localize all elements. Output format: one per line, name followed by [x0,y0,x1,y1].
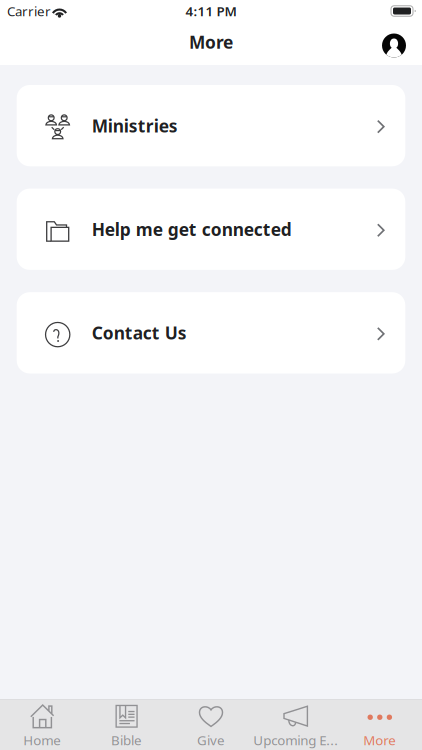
staticText: Upcoming E... [253,731,338,749]
staticText: Give [197,731,225,749]
button[interactable]: More [338,699,422,750]
button[interactable]: Give [169,699,253,750]
button[interactable]: Ministries [17,85,405,166]
button[interactable]: Account [372,19,416,67]
button[interactable]: Upcoming E... [253,699,338,750]
staticText: Ministries [92,114,178,137]
staticText: More [189,30,233,53]
button[interactable]: Contact Us [17,292,405,373]
staticText: 4:11 PM [185,2,236,20]
staticText: Carrier [7,2,51,20]
button[interactable]: Help me get connected [17,189,405,270]
staticText: Contact Us [92,321,187,344]
button[interactable]: Bible [84,699,169,750]
staticText: More [363,731,396,749]
staticText: Home [23,731,61,749]
staticText: Bible [111,731,142,749]
staticText: Help me get connected [92,218,292,241]
button[interactable]: Home [0,699,84,750]
